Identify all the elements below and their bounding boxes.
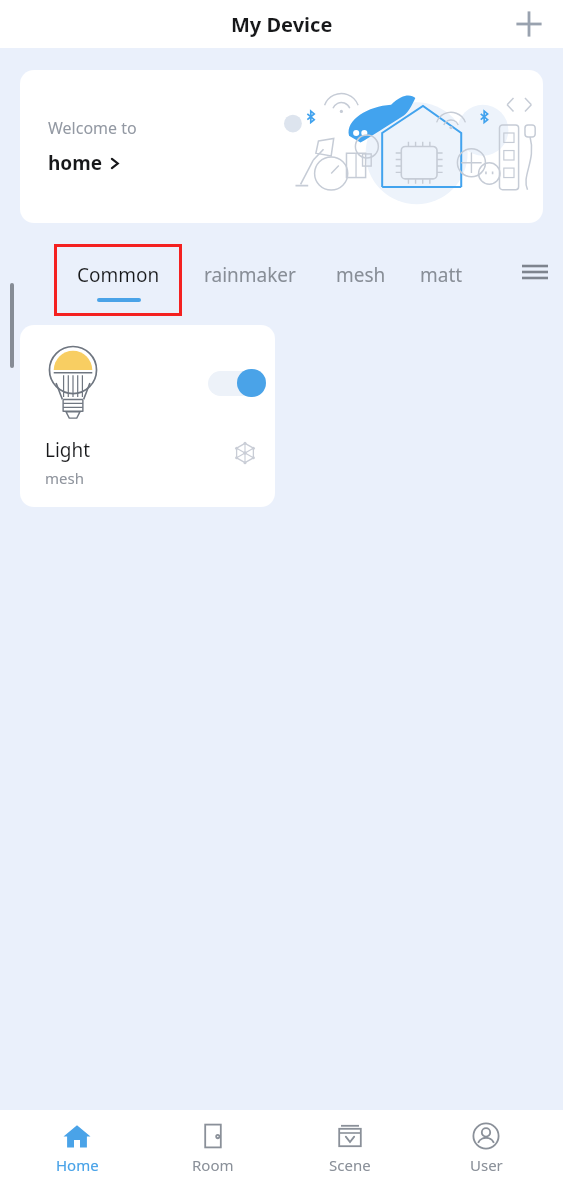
button[interactable]: Home bbox=[17, 1110, 137, 1186]
staticText: rainmaker bbox=[204, 262, 296, 288]
staticText: mesh bbox=[45, 468, 84, 488]
staticText: Scene bbox=[329, 1155, 371, 1175]
button[interactable]: mesh bbox=[318, 244, 404, 316]
staticText: User bbox=[470, 1155, 503, 1175]
staticText: Home bbox=[56, 1155, 99, 1175]
button[interactable]: Add device bbox=[507, 2, 551, 46]
button[interactable]: Welcome to bbox=[20, 70, 543, 223]
button[interactable]: Power toggle bbox=[20, 325, 275, 507]
staticText: Common bbox=[77, 262, 160, 288]
button[interactable]: Common bbox=[54, 244, 182, 316]
staticText: Welcome to bbox=[48, 117, 137, 139]
button[interactable]: More tabs bbox=[515, 252, 555, 292]
button[interactable]: Power toggle bbox=[208, 369, 266, 397]
staticText: matt bbox=[420, 262, 463, 288]
staticText: Light bbox=[45, 437, 91, 463]
staticText: home bbox=[48, 150, 103, 176]
button[interactable]: rainmaker bbox=[182, 244, 318, 316]
staticText: My Device bbox=[231, 11, 333, 38]
button[interactable]: matt bbox=[404, 244, 463, 316]
button[interactable]: Room bbox=[153, 1110, 273, 1186]
staticText: Room bbox=[192, 1155, 234, 1175]
button[interactable]: User bbox=[426, 1110, 546, 1186]
button[interactable]: Scene bbox=[290, 1110, 410, 1186]
staticText: mesh bbox=[336, 262, 386, 288]
